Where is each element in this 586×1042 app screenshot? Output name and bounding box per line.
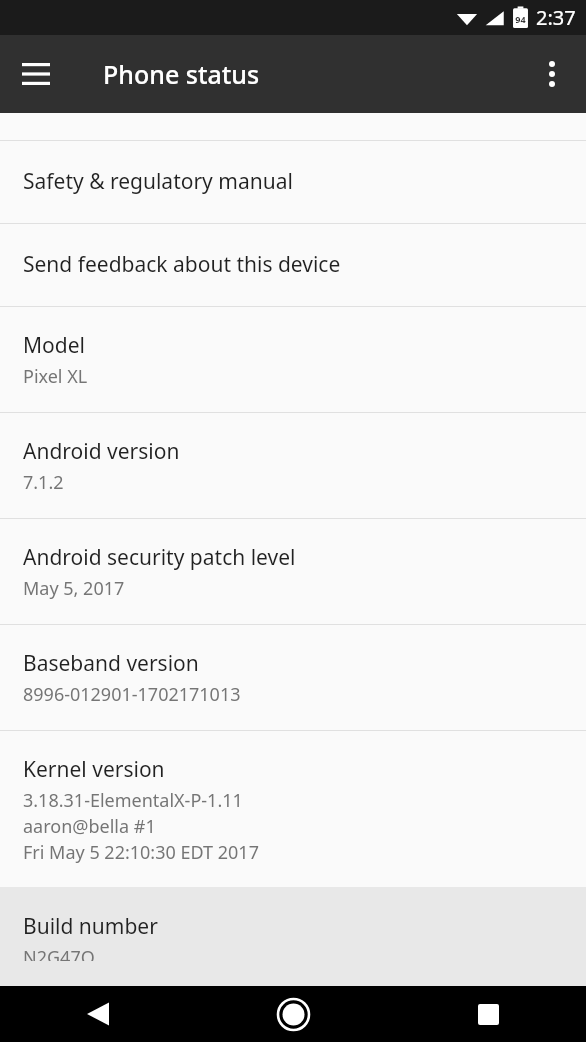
button[interactable]: Safety & regulatory manual bbox=[0, 141, 586, 223]
button[interactable]: Baseband version bbox=[0, 625, 586, 730]
staticText: Baseband version bbox=[23, 649, 199, 678]
button[interactable]: Open navigation menu bbox=[8, 46, 64, 102]
button[interactable]: Build number bbox=[0, 887, 586, 986]
staticText: Kernel version bbox=[23, 755, 165, 784]
button[interactable]: Back bbox=[0, 986, 196, 1042]
staticText: May 5, 2017 bbox=[23, 576, 125, 601]
staticText: Pixel XL bbox=[23, 364, 88, 389]
staticText: Fri May 5 22:10:30 EDT 2017 bbox=[23, 840, 259, 865]
button[interactable]: More options bbox=[524, 46, 580, 102]
staticText: Safety & regulatory manual bbox=[23, 167, 293, 196]
staticText: Send feedback about this device bbox=[23, 250, 341, 279]
staticText: 3.18.31-ElementalX-P-1.11 bbox=[23, 788, 243, 813]
staticText: Build number bbox=[23, 912, 158, 941]
staticText: Android security patch level bbox=[23, 543, 296, 572]
staticText: 94 bbox=[515, 13, 526, 25]
button[interactable]: Android version bbox=[0, 413, 586, 518]
button[interactable]: Model bbox=[0, 307, 586, 412]
button[interactable]: Recent apps bbox=[391, 986, 586, 1042]
staticText: aaron@bella #1 bbox=[23, 814, 156, 839]
staticText: N2G47O bbox=[23, 945, 95, 961]
staticText: 7.1.2 bbox=[23, 470, 64, 495]
staticText: 2:37 bbox=[536, 4, 576, 31]
button[interactable]: Send feedback about this device bbox=[0, 224, 586, 306]
staticText: Model bbox=[23, 331, 85, 360]
button[interactable]: Home bbox=[196, 986, 391, 1042]
staticText: Phone status bbox=[103, 57, 260, 91]
staticText: 8996-012901-1702171013 bbox=[23, 682, 241, 707]
button[interactable]: Android security patch level bbox=[0, 519, 586, 624]
staticText: Android version bbox=[23, 437, 180, 466]
button[interactable]: Kernel version bbox=[0, 731, 586, 887]
